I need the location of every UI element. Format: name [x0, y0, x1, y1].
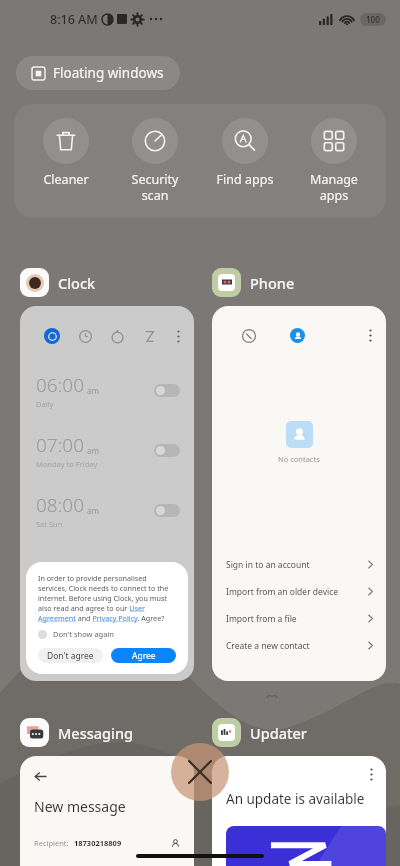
button[interactable]: No contacts [212, 306, 386, 681]
staticText: 07:00 [36, 432, 85, 458]
staticText: New message [34, 797, 126, 816]
button[interactable]: Clock [20, 268, 96, 297]
button[interactable]: Manage apps [296, 118, 372, 203]
staticText: am [87, 445, 99, 456]
button[interactable]: Floating windows [16, 56, 180, 90]
staticText: 8:16 AM [50, 11, 98, 28]
button[interactable]: 06:00 [20, 306, 194, 681]
staticText: Cleaner [28, 171, 104, 188]
button[interactable]: 06:00 [20, 360, 194, 420]
staticText: Sign in to an account [226, 559, 310, 571]
button[interactable]: Import from an older device [212, 578, 386, 605]
staticText: Don't show again [53, 629, 114, 639]
button[interactable] [154, 504, 180, 517]
staticText: 08:00 [36, 492, 85, 518]
button[interactable]: Don't agree [38, 648, 103, 663]
button[interactable]: Messaging [20, 718, 134, 747]
button[interactable]: Sign in to an account [212, 551, 386, 578]
button[interactable]: Agree [111, 648, 176, 663]
button[interactable]: Close all recent apps [171, 743, 229, 801]
staticText: Find apps [207, 171, 283, 188]
button[interactable]: Cleaner [28, 118, 104, 188]
staticText: am [87, 505, 99, 516]
staticText: 06:00 [36, 372, 85, 398]
staticText: Agree [132, 650, 156, 662]
staticText: Daily [36, 399, 54, 409]
button[interactable]: 08:00 [20, 480, 194, 540]
staticText: 100 [366, 14, 380, 25]
button[interactable]: Import from a file [212, 605, 386, 632]
staticText: Floating windows [53, 64, 164, 82]
staticText: Messaging [58, 723, 134, 743]
staticText: Create a new contact [226, 640, 310, 652]
button[interactable]: Security scan [117, 118, 193, 203]
button[interactable]: Phone [212, 268, 295, 297]
button[interactable]: Create a new contact [212, 632, 386, 659]
staticText: An update is available [226, 790, 365, 808]
button[interactable]: Don't show again [38, 629, 114, 639]
staticText: Import from an older device [226, 586, 339, 598]
button[interactable]: Updater [212, 718, 307, 747]
button[interactable]: Find apps [207, 118, 283, 188]
staticText: Monday to Friday [36, 459, 98, 469]
staticText: am [87, 385, 99, 396]
staticText: Security scan [117, 171, 193, 203]
staticText: Recipient: [34, 838, 69, 848]
staticText: 18730218809 [74, 838, 122, 848]
button[interactable]: An update is available [212, 756, 386, 866]
button[interactable]: 07:00 [20, 420, 194, 480]
button[interactable] [154, 384, 180, 397]
staticText: Clock [58, 273, 96, 293]
staticText: Phone [250, 273, 295, 293]
staticText: Updater [250, 723, 307, 743]
button[interactable]: New message [20, 756, 194, 866]
staticText: No contacts [278, 454, 320, 464]
button[interactable] [154, 444, 180, 457]
staticText: Import from a file [226, 613, 297, 625]
staticText: Don't agree [47, 650, 94, 662]
staticText: In order to provide personalised service… [38, 573, 176, 623]
staticText: Manage apps [296, 171, 372, 203]
staticText: Sat Sun [36, 519, 63, 529]
